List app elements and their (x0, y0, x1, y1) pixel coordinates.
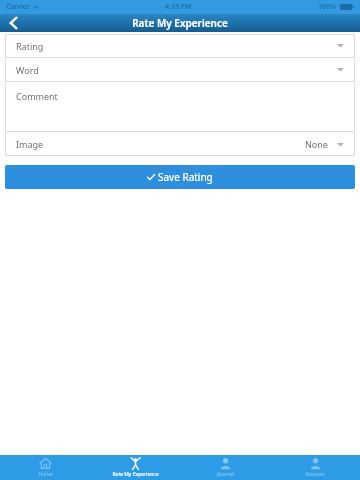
button[interactable]: Back (0, 14, 26, 32)
staticText: Save Rating (158, 170, 213, 184)
staticText: Rate My Experience (112, 471, 159, 478)
staticText: Carrier (6, 2, 30, 12)
button[interactable]: Save Rating (5, 165, 355, 189)
button[interactable]: Word (5, 58, 355, 81)
staticText: 4:33 PM (165, 2, 192, 12)
staticText: Word (16, 64, 39, 76)
button[interactable]: Journal (180, 455, 270, 480)
staticText: Account (305, 471, 325, 478)
staticText: 100% (318, 2, 337, 12)
button[interactable]: Account (270, 455, 360, 480)
button[interactable]: Image (5, 132, 355, 156)
button[interactable]: Comment (5, 82, 355, 131)
staticText: Image (16, 138, 44, 150)
staticText: None (305, 138, 328, 150)
staticText: Home (38, 471, 53, 478)
button[interactable]: Rating (5, 34, 355, 57)
staticText: Comment (16, 90, 58, 102)
staticText: Journal (217, 471, 234, 478)
staticText: Rating (16, 40, 44, 52)
button[interactable]: Rate My Experience (90, 455, 180, 480)
button[interactable]: Home (0, 455, 90, 480)
staticText: Rate My Experience (132, 16, 228, 30)
